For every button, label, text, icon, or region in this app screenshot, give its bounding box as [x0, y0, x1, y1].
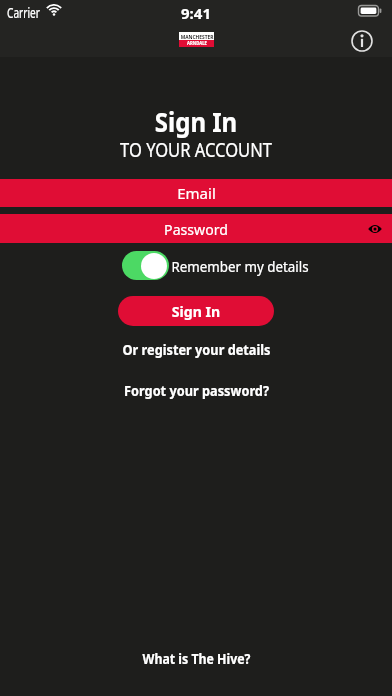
button[interactable]: Sign In	[118, 296, 274, 326]
button[interactable]: Forgot your password?	[107, 376, 286, 404]
button[interactable]: Email	[0, 179, 392, 207]
staticText: Remember my details	[171, 256, 309, 276]
staticText: Or register your details	[122, 339, 271, 359]
button[interactable]	[348, 27, 376, 55]
button[interactable]: Password	[0, 214, 392, 243]
staticText: Email	[177, 183, 216, 203]
staticText: 9:41	[0, 3, 392, 23]
staticText: What is The Hive?	[142, 649, 251, 668]
staticText: Forgot your password?	[124, 380, 269, 400]
staticText: Sign In	[22, 103, 370, 140]
staticText: Carrier	[7, 4, 40, 22]
staticText: ARNDALE	[171, 40, 222, 47]
button[interactable]: Remember my details	[122, 251, 326, 280]
button[interactable]: Or register your details	[105, 335, 288, 363]
staticText: Password	[164, 219, 228, 239]
staticText: TO YOUR ACCOUNT	[25, 137, 366, 163]
button[interactable]: What is The Hive?	[131, 645, 262, 672]
staticText: MANCHESTER	[171, 33, 223, 40]
staticText: Sign In	[172, 301, 220, 321]
button[interactable]: MANCHESTER	[179, 32, 214, 47]
